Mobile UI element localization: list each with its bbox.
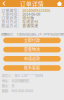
- button[interactable]: Home: [55, 0, 64, 7]
- staticText: 张三 138****8888: [14, 73, 43, 78]
- staticText: 配送方式：: [2, 23, 22, 28]
- staticText: 客服：: [2, 88, 11, 93]
- button[interactable]: 查看物流: [3, 47, 61, 52]
- staticText: 20140609123456: [22, 8, 50, 13]
- staticText: 申请退款: [24, 56, 40, 62]
- staticText: 北京市朝阳区: [11, 78, 29, 83]
- staticText: 联系客服: [24, 65, 40, 71]
- staticText: 备注：: [2, 83, 11, 88]
- staticText: 400-000-0000: [11, 88, 33, 93]
- staticText: 查看物流: [24, 47, 40, 52]
- staticText: 立即付款: [24, 37, 40, 43]
- button[interactable]: Back: [0, 0, 8, 7]
- button[interactable]: 申请退款: [3, 56, 61, 62]
- staticText: 订单编号：: [2, 8, 22, 13]
- staticText: 订单状态：: [2, 15, 22, 21]
- staticText: 订单详情: [20, 0, 44, 7]
- staticText: 在线支付: [22, 19, 38, 24]
- staticText: 温馨提示：下单成功后请在 24 小时内完成付款: [0, 31, 63, 36]
- staticText: 支付方式：: [2, 19, 22, 24]
- staticText: 无: [11, 83, 14, 88]
- staticText: 待付款: [22, 15, 34, 21]
- staticText: 2014-06-09: [22, 11, 40, 17]
- staticText: 地址：: [2, 78, 11, 83]
- button[interactable]: 立即付款: [3, 38, 61, 43]
- button[interactable]: 联系客服: [3, 65, 61, 71]
- staticText: 收货人：: [2, 73, 14, 78]
- staticText: 普通快递: [22, 23, 38, 28]
- staticText: 下单时间：: [2, 11, 22, 17]
